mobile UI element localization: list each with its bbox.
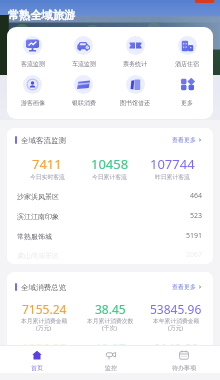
staticText: 本月累计消费金额 — [21, 317, 68, 324]
button[interactable]: 游客画像 — [7, 75, 58, 107]
staticText: 上年累计消费金额 — [153, 356, 200, 363]
staticText: 107744 — [150, 155, 195, 173]
staticText: 本月累计消费次数 — [87, 317, 134, 324]
staticText: 常熟服饰城 — [17, 232, 52, 241]
staticText: 图书馆借还 — [120, 99, 150, 107]
staticText: 1286.35 — [22, 340, 67, 356]
button[interactable]: 车流监测 — [58, 36, 109, 68]
staticText: 游客画像 — [21, 99, 45, 107]
button[interactable]: 首页 — [0, 350, 74, 373]
button[interactable]: 监控 — [74, 350, 147, 373]
staticText: (万元) — [168, 324, 184, 332]
staticText: 今日实时客流 — [30, 173, 65, 180]
staticText: 银联消费 — [72, 99, 96, 107]
staticText: 滨江江南印象 — [17, 212, 59, 221]
other: 待办事项 — [179, 350, 189, 360]
staticText: 查看更多 — [172, 136, 196, 144]
staticText: (千次) — [102, 363, 118, 371]
button[interactable]: 沙家浜风景区 — [7, 186, 213, 206]
staticText: 12.07 — [95, 340, 126, 356]
staticText: (万元) — [168, 363, 184, 371]
staticText: 2067 — [186, 250, 203, 260]
button[interactable]: 票务统计 — [109, 36, 161, 68]
staticText: 7155.24 — [22, 301, 67, 317]
staticText: 10458 — [91, 155, 129, 173]
button[interactable]: 酒店住宿 — [161, 36, 213, 68]
staticText: (万元) — [36, 324, 52, 332]
staticText: 客流监测 — [21, 60, 45, 68]
other: 监控 — [106, 350, 116, 360]
other: 首页 — [32, 350, 42, 360]
staticText: 常熟全域旅游 — [8, 8, 76, 22]
staticText: 全域消费总览 — [21, 283, 66, 292]
button[interactable]: 更多 — [161, 75, 213, 107]
staticText: 监控 — [105, 364, 117, 372]
staticText: 523 — [190, 211, 203, 221]
staticText: 7411 — [32, 155, 62, 173]
staticText: 本年累计消费金额 — [153, 317, 200, 324]
staticText: 更多 — [181, 99, 193, 107]
staticText: 38.45 — [95, 301, 126, 317]
staticText: (千次) — [102, 324, 118, 332]
staticText: 沙家浜风景区 — [17, 192, 59, 201]
staticText: (万元) — [36, 363, 52, 371]
button[interactable]: 滨江江南印象 — [7, 206, 213, 226]
staticText: 本周累计消费次数 — [87, 356, 134, 363]
button[interactable]: 银联消费 — [58, 75, 109, 107]
button[interactable]: 图书馆借还 — [109, 75, 161, 107]
staticText: 车流监测 — [72, 60, 96, 68]
staticText: 9142.88 — [154, 340, 199, 356]
staticText: 票务统计 — [123, 60, 147, 68]
staticText: 查看更多 — [172, 283, 196, 291]
staticText: 今日累计客流 — [92, 173, 127, 180]
button[interactable]: 查看更多 — [170, 281, 204, 293]
staticText: 待办事项 — [172, 364, 196, 372]
staticText: 昨日累计客流 — [155, 173, 190, 180]
staticText: 464 — [190, 191, 203, 201]
staticText: 本周累计消费金额 — [21, 356, 68, 363]
button[interactable]: 客流监测 — [7, 36, 58, 68]
button[interactable]: 常熟服饰城 — [7, 226, 213, 246]
staticText: 酒店住宿 — [175, 60, 199, 68]
staticText: 全域客流监测 — [21, 136, 66, 145]
staticText: 首页 — [31, 364, 43, 372]
staticText: 虞山尚湖景区 — [17, 251, 59, 260]
staticText: 53845.96 — [150, 301, 202, 317]
button[interactable]: 查看更多 — [170, 134, 204, 146]
staticText: 5191 — [186, 231, 203, 241]
button[interactable]: 待办事项 — [147, 350, 220, 373]
